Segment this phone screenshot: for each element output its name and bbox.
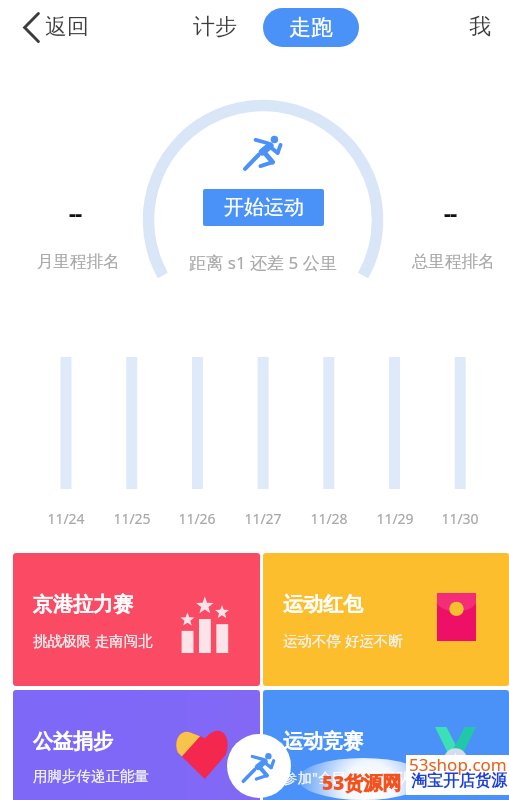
staticText: 挑战极限 走南闯北 [33, 630, 153, 650]
staticText: 淘宝开店货源 [411, 771, 507, 791]
staticText: 11/24 [31, 509, 101, 528]
button[interactable]: 京港拉力赛 [13, 553, 260, 686]
staticText: 11/26 [162, 509, 232, 528]
staticText: 11/25 [97, 509, 167, 528]
staticText: 总里程排名 [412, 251, 495, 272]
staticText: 开始运动 [224, 195, 304, 220]
staticText: 返回 [45, 13, 89, 41]
staticText: -- [35, 197, 115, 228]
staticText: 距离 s1 还差 5 公里 [163, 251, 363, 274]
staticText: 53shop.com [409, 753, 507, 776]
button[interactable]: 运动红包 [263, 553, 509, 686]
button[interactable]: 走跑 [263, 8, 359, 47]
button[interactable]: 我 [469, 13, 491, 41]
staticText: 11/29 [360, 509, 430, 528]
staticText: 用脚步传递正能量 [33, 767, 149, 785]
staticText: 运动竞赛 [283, 729, 363, 754]
button[interactable]: 公益捐步 [13, 690, 260, 800]
staticText: 走跑 [289, 14, 333, 42]
staticText: 月里程排名 [37, 251, 120, 272]
button[interactable]: 开始运动 [203, 189, 324, 226]
staticText: 京港拉力赛 [33, 592, 133, 617]
button[interactable]: 返回 [21, 10, 89, 44]
button[interactable]: 运动竞赛 [263, 690, 509, 800]
staticText: 11/27 [228, 509, 298, 528]
staticText: 运动红包 [283, 592, 363, 617]
button[interactable]: 计步 [193, 13, 237, 41]
staticText: 11/30 [425, 509, 495, 528]
staticText: 11/28 [294, 509, 364, 528]
staticText: 公益捐步 [33, 729, 113, 754]
staticText: 53货源网 [322, 770, 402, 796]
button[interactable]: Start running [227, 734, 291, 798]
staticText: -- [410, 197, 490, 228]
staticText: 运动不停 好运不断 [283, 630, 403, 650]
staticText: 参加"全民运动"组队pk [283, 767, 428, 787]
